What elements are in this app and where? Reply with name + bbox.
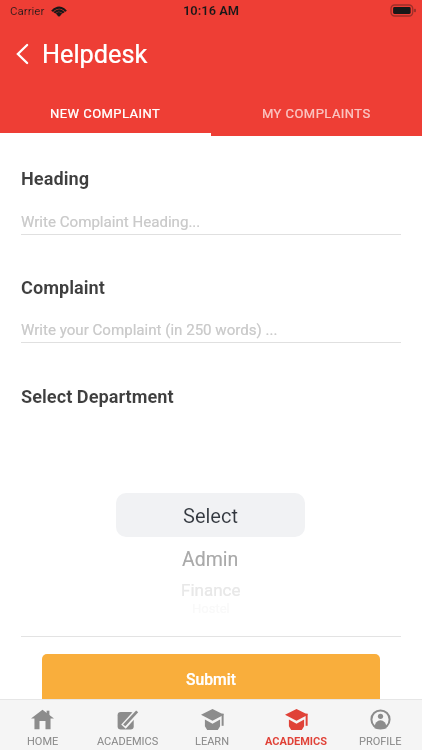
staticText: Submit <box>186 670 236 688</box>
staticText: LEARN <box>195 735 229 748</box>
button[interactable]: Select <box>116 493 305 537</box>
staticText: ACADEMICS <box>265 735 328 748</box>
staticText: Select <box>183 504 238 527</box>
staticText: Heading <box>21 168 90 189</box>
staticText: Admin <box>182 548 239 571</box>
staticText: ACADEMICS <box>97 735 159 748</box>
button[interactable]: Submit <box>42 654 380 704</box>
staticText: NEW COMPLAINT <box>50 106 161 121</box>
staticText: Helpdesk <box>42 40 148 70</box>
button[interactable]: PROFILE <box>338 699 422 750</box>
staticText: Select Department <box>21 386 174 407</box>
button[interactable]: Admin <box>116 542 305 577</box>
staticText: Carrier <box>10 4 45 17</box>
staticText: Complaint <box>21 277 105 298</box>
staticText: Write your Complaint (in 250 words) ... <box>21 321 278 339</box>
button[interactable]: MY COMPLAINTS <box>211 90 422 136</box>
button[interactable]: NEW COMPLAINT <box>0 90 211 136</box>
staticText: Finance <box>181 580 241 600</box>
button[interactable]: ACADEMICS <box>85 699 170 750</box>
staticText: Write Complaint Heading... <box>21 213 201 231</box>
staticText: PROFILE <box>359 735 402 748</box>
button[interactable]: HOME <box>0 699 85 750</box>
button[interactable]: Finance <box>116 575 305 604</box>
button[interactable]: LEARN <box>170 699 254 750</box>
staticText: 10:16 AM <box>183 3 239 18</box>
staticText: MY COMPLAINTS <box>262 106 371 121</box>
button[interactable]: Back <box>9 40 35 68</box>
staticText: HOME <box>27 735 59 748</box>
button[interactable]: ACADEMICS <box>254 699 338 750</box>
